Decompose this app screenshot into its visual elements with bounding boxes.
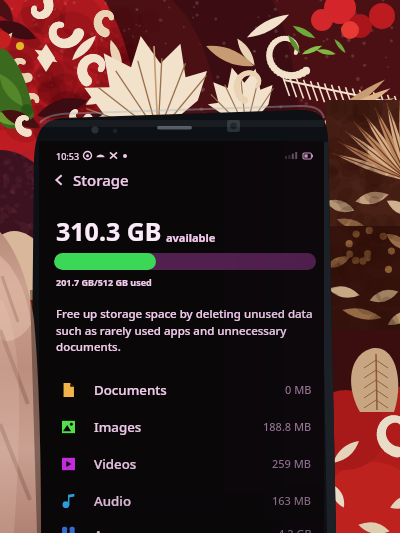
button[interactable]: Back: [46, 168, 72, 192]
button[interactable]: Apps: [39, 526, 324, 533]
button[interactable]: Documents: [39, 371, 324, 408]
button[interactable]: Videos: [39, 445, 324, 482]
staticText: 10:53: [56, 150, 80, 162]
staticText: Audio: [94, 492, 132, 510]
staticText: Storage: [73, 170, 129, 190]
staticText: Apps: [94, 526, 126, 533]
staticText: 4.2 GB: [278, 526, 312, 533]
staticText: Documents: [94, 381, 167, 399]
button[interactable]: Audio: [39, 482, 324, 519]
staticText: 163 MB: [272, 493, 312, 508]
staticText: Free up storage space by deleting unused…: [56, 306, 316, 354]
staticText: Videos: [94, 455, 137, 473]
staticText: 188.8 MB: [263, 419, 312, 434]
staticText: available: [166, 230, 216, 245]
staticText: 310.3 GB: [56, 214, 162, 248]
button[interactable]: Images: [39, 408, 324, 445]
staticText: 259 MB: [272, 456, 312, 471]
staticText: 0 MB: [285, 382, 312, 397]
staticText: 201.7 GB/512 GB used: [56, 276, 152, 288]
staticText: Images: [94, 418, 142, 436]
